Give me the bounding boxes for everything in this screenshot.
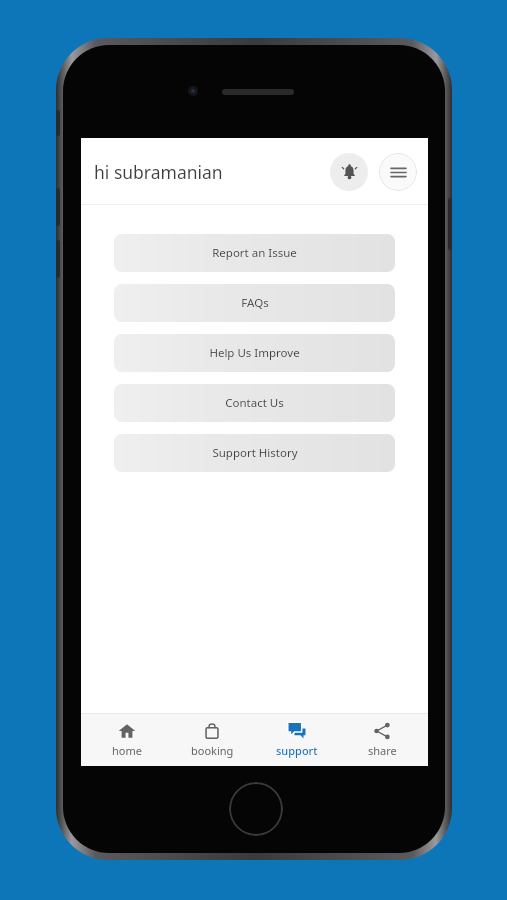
staticText: Report an Issue	[212, 245, 297, 261]
button[interactable]: booking	[173, 714, 251, 766]
button[interactable]: share	[343, 714, 421, 766]
button[interactable]: Menu	[379, 153, 417, 191]
staticText: booking	[191, 743, 234, 758]
staticText: Help Us Improve	[209, 345, 300, 361]
staticText: Support History	[212, 445, 298, 461]
button[interactable]: Report an Issue	[114, 234, 395, 272]
button[interactable]: Support History	[114, 434, 395, 472]
staticText: support	[276, 743, 318, 758]
staticText: home	[112, 743, 142, 758]
staticText: hi subramanian	[94, 160, 223, 184]
button[interactable]: Contact Us	[114, 384, 395, 422]
staticText: Contact Us	[225, 395, 284, 411]
button[interactable]: Notifications	[330, 153, 368, 191]
button[interactable]: FAQs	[114, 284, 395, 322]
button[interactable]: Help Us Improve	[114, 334, 395, 372]
staticText: share	[368, 743, 397, 758]
button[interactable]: home	[88, 714, 166, 766]
staticText: FAQs	[241, 295, 269, 311]
button[interactable]: support	[258, 714, 336, 766]
